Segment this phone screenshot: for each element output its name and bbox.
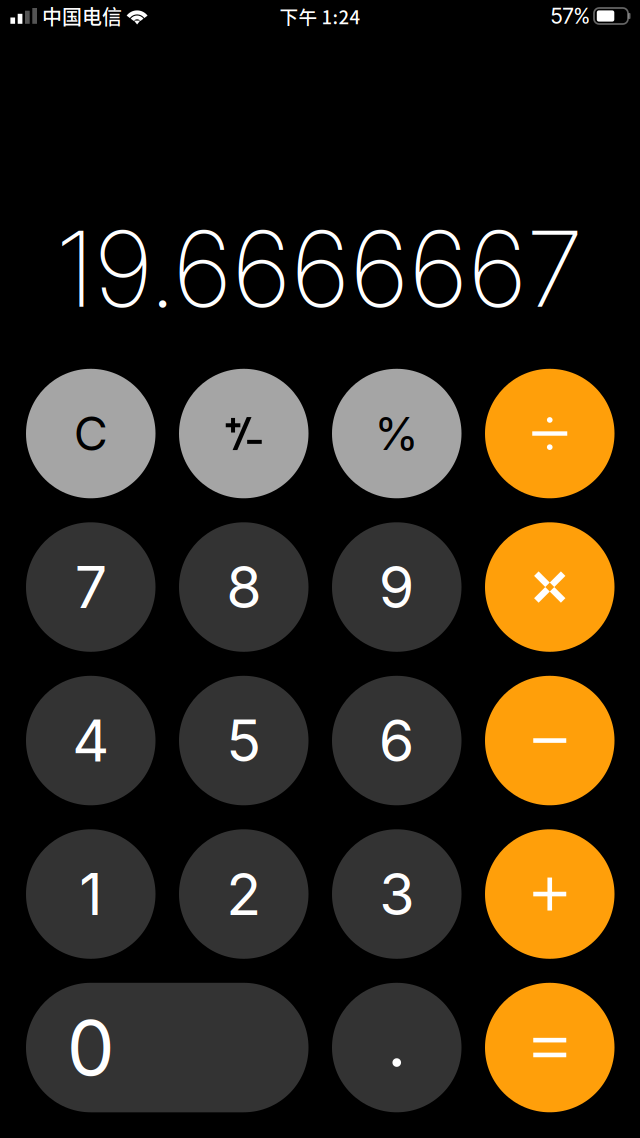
staticText: %	[374, 406, 419, 461]
staticText: C	[74, 405, 108, 462]
button[interactable]: C	[26, 369, 155, 498]
button[interactable]: 2	[179, 829, 308, 959]
button[interactable]	[485, 522, 614, 652]
staticText: 19.6666667	[56, 206, 583, 332]
staticText: 中国电信	[42, 1, 122, 30]
button[interactable]	[485, 829, 614, 959]
staticText: 3	[379, 859, 414, 929]
button[interactable]: 6	[332, 676, 461, 805]
button[interactable]: 1	[26, 829, 155, 959]
button[interactable]: 9	[332, 522, 461, 652]
staticText: 6	[379, 706, 415, 775]
staticText: 8	[226, 552, 261, 622]
button[interactable]	[485, 369, 614, 498]
button[interactable]	[485, 983, 614, 1112]
staticText: 57%	[550, 3, 589, 29]
button[interactable]	[485, 676, 614, 805]
staticText: 9	[379, 552, 415, 622]
staticText: 5	[226, 706, 261, 775]
button[interactable]: %	[332, 369, 461, 498]
button[interactable]: 7	[26, 522, 155, 652]
staticText: 7	[75, 552, 107, 622]
button[interactable]: 3	[332, 829, 461, 959]
button[interactable]	[332, 983, 461, 1112]
button[interactable]: 4	[26, 676, 155, 805]
staticText: 4	[72, 706, 109, 775]
staticText: 1	[79, 859, 102, 929]
button[interactable]: 5	[179, 676, 308, 805]
button[interactable]: 8	[179, 522, 308, 652]
staticText: 下午 1:24	[279, 2, 360, 29]
button[interactable]: 0	[26, 983, 308, 1112]
staticText: 2	[226, 859, 261, 929]
button[interactable]	[179, 369, 308, 498]
staticText: 0	[67, 1002, 115, 1094]
